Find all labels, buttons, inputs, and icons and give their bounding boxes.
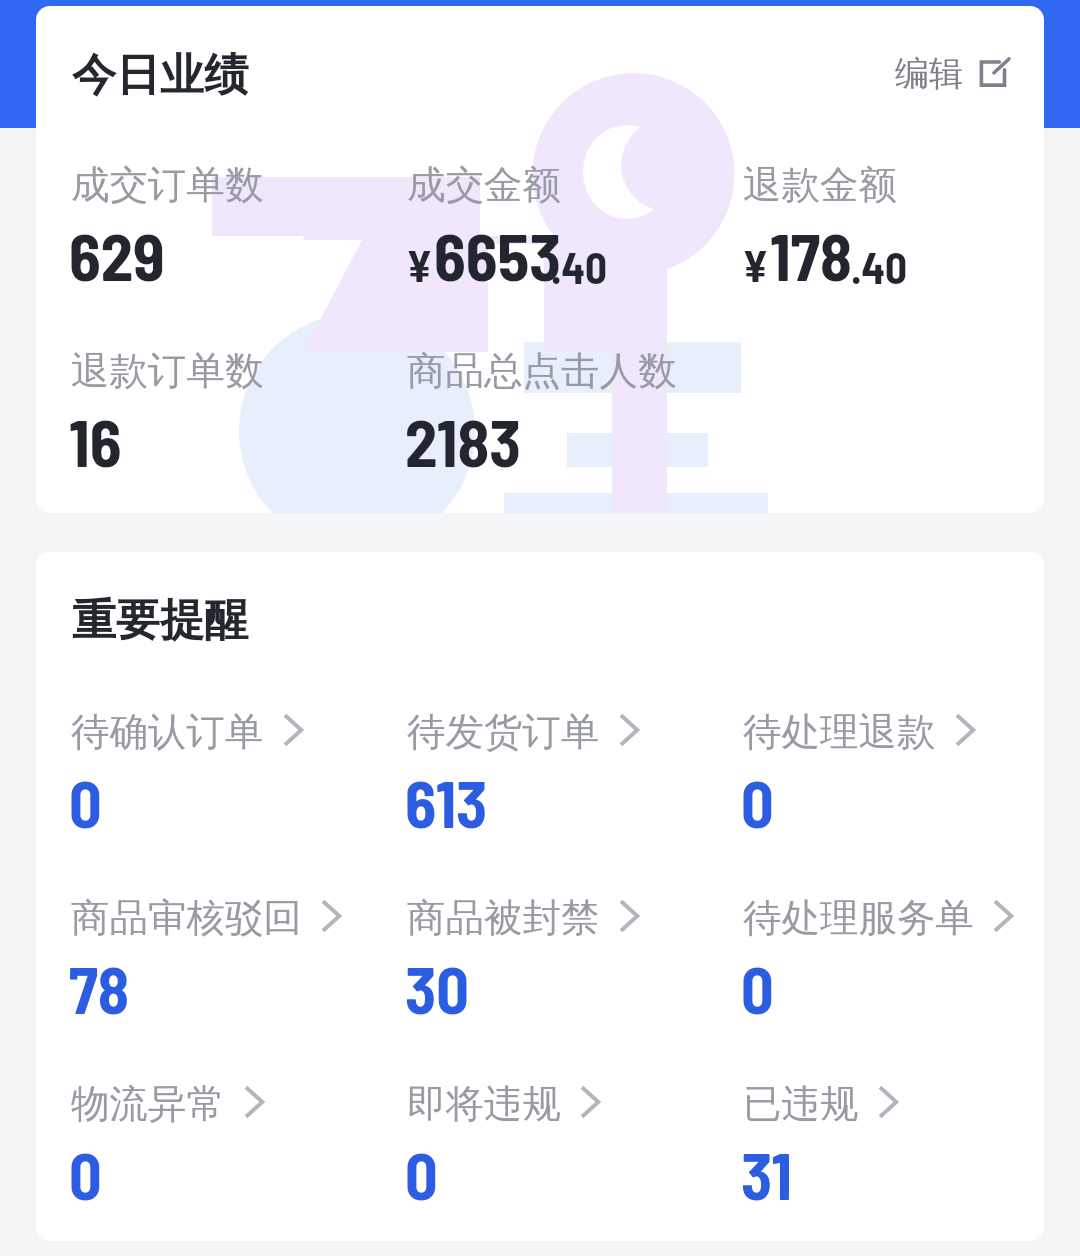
staticText: 6653 [434, 216, 561, 294]
staticText: 已违规 [743, 1080, 859, 1129]
staticText: 16 [69, 402, 122, 480]
staticText: 待处理退款 [743, 708, 936, 757]
staticText: 0 [741, 950, 774, 1027]
staticText: 重要提醒 [72, 593, 248, 648]
staticText: 0 [405, 1136, 438, 1213]
button[interactable]: 即将违规 [407, 1080, 707, 1240]
staticText: 退款订单数 [71, 347, 264, 396]
staticText: .40 [551, 241, 607, 293]
staticText: ¥ [406, 238, 433, 291]
button[interactable]: 已违规 [743, 1080, 1043, 1240]
button[interactable]: 待确认订单 [71, 708, 371, 868]
button[interactable]: 待处理服务单 [743, 894, 1043, 1054]
staticText: 待确认订单 [71, 708, 264, 757]
staticText: 待处理服务单 [743, 894, 974, 943]
staticText: 待发货订单 [407, 708, 600, 757]
staticText: 0 [69, 1136, 102, 1213]
button[interactable]: 待发货订单 [407, 708, 707, 868]
staticText: 629 [69, 216, 165, 294]
staticText: 31 [741, 1136, 793, 1213]
button[interactable]: 商品被封禁 [407, 894, 707, 1054]
button[interactable]: 物流异常 [71, 1080, 371, 1240]
staticText: 编辑 [895, 52, 963, 95]
staticText: 30 [405, 950, 469, 1027]
staticText: 退款金额 [743, 161, 897, 210]
staticText: ¥ [742, 238, 769, 291]
staticText: 2183 [405, 402, 522, 480]
button[interactable]: 待处理退款 [743, 708, 1043, 868]
staticText: 613 [405, 764, 488, 841]
staticText: 物流异常 [71, 1080, 225, 1129]
staticText: 成交订单数 [71, 161, 264, 210]
other: 编辑 [979, 59, 1009, 89]
staticText: 0 [741, 764, 774, 841]
staticText: 商品审核驳回 [71, 894, 302, 943]
staticText: 今日业绩 [72, 48, 248, 103]
staticText: 0 [69, 764, 102, 841]
button[interactable]: 编辑 [895, 52, 1009, 95]
staticText: 成交金额 [407, 161, 561, 210]
staticText: 178 [770, 216, 852, 294]
staticText: 商品总点击人数 [407, 347, 677, 396]
staticText: 78 [69, 950, 130, 1027]
staticText: 商品被封禁 [407, 894, 600, 943]
button[interactable]: 商品审核驳回 [71, 894, 371, 1054]
staticText: 即将违规 [407, 1080, 561, 1129]
staticText: .40 [851, 241, 907, 293]
